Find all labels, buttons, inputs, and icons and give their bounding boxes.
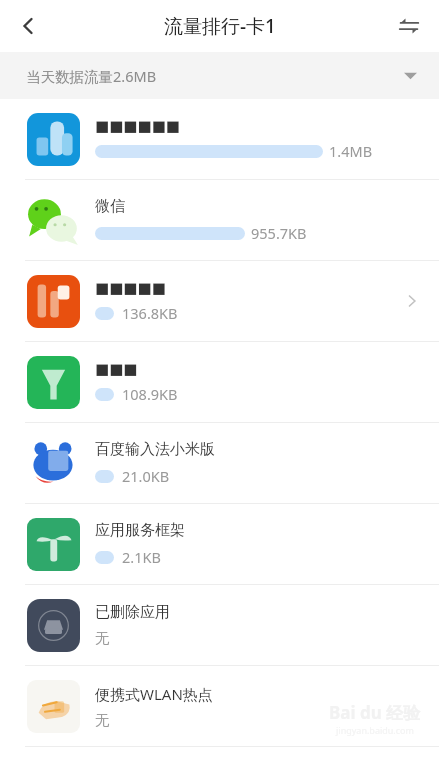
- staticText: 108.9KB: [122, 384, 178, 404]
- staticText: 应用服务框架: [95, 521, 185, 540]
- staticText: 微信: [95, 197, 125, 216]
- staticText: 当天数据流量2.6MB: [26, 66, 157, 86]
- staticText: ■■■: [95, 360, 138, 377]
- staticText: 955.7KB: [251, 223, 307, 243]
- staticText: 无: [95, 629, 110, 647]
- button[interactable]: 便携式WLAN热点: [0, 666, 439, 746]
- staticText: 1.4MB: [329, 141, 373, 161]
- staticText: jingyan.baidu.com: [336, 724, 414, 736]
- button[interactable]: 微信: [0, 180, 439, 260]
- button[interactable]: ■■■■■■: [0, 99, 439, 179]
- staticText: 百度输入法小米版: [95, 440, 215, 459]
- staticText: 2.1KB: [122, 547, 161, 567]
- staticText: 便携式WLAN热点: [95, 684, 213, 704]
- button[interactable]: ■■■: [0, 342, 439, 422]
- button[interactable]: 应用服务框架: [0, 504, 439, 584]
- staticText: 136.8KB: [122, 303, 178, 323]
- button[interactable]: 百度输入法小米版: [0, 423, 439, 503]
- staticText: 无: [95, 711, 110, 729]
- button[interactable]: Switch card: [387, 4, 431, 48]
- staticText: ■■■■■: [95, 279, 166, 296]
- staticText: 21.0KB: [122, 466, 170, 486]
- button[interactable]: ■■■■■: [0, 261, 439, 341]
- staticText: ■■■■■■: [95, 117, 181, 134]
- button[interactable]: Back: [6, 4, 50, 48]
- staticText: Bai du 经验: [329, 701, 421, 724]
- staticText: 流量排行-卡1: [164, 13, 276, 39]
- staticText: 已删除应用: [95, 603, 170, 622]
- button[interactable]: 当天数据流量2.6MB: [0, 52, 439, 99]
- button[interactable]: 已删除应用: [0, 585, 439, 665]
